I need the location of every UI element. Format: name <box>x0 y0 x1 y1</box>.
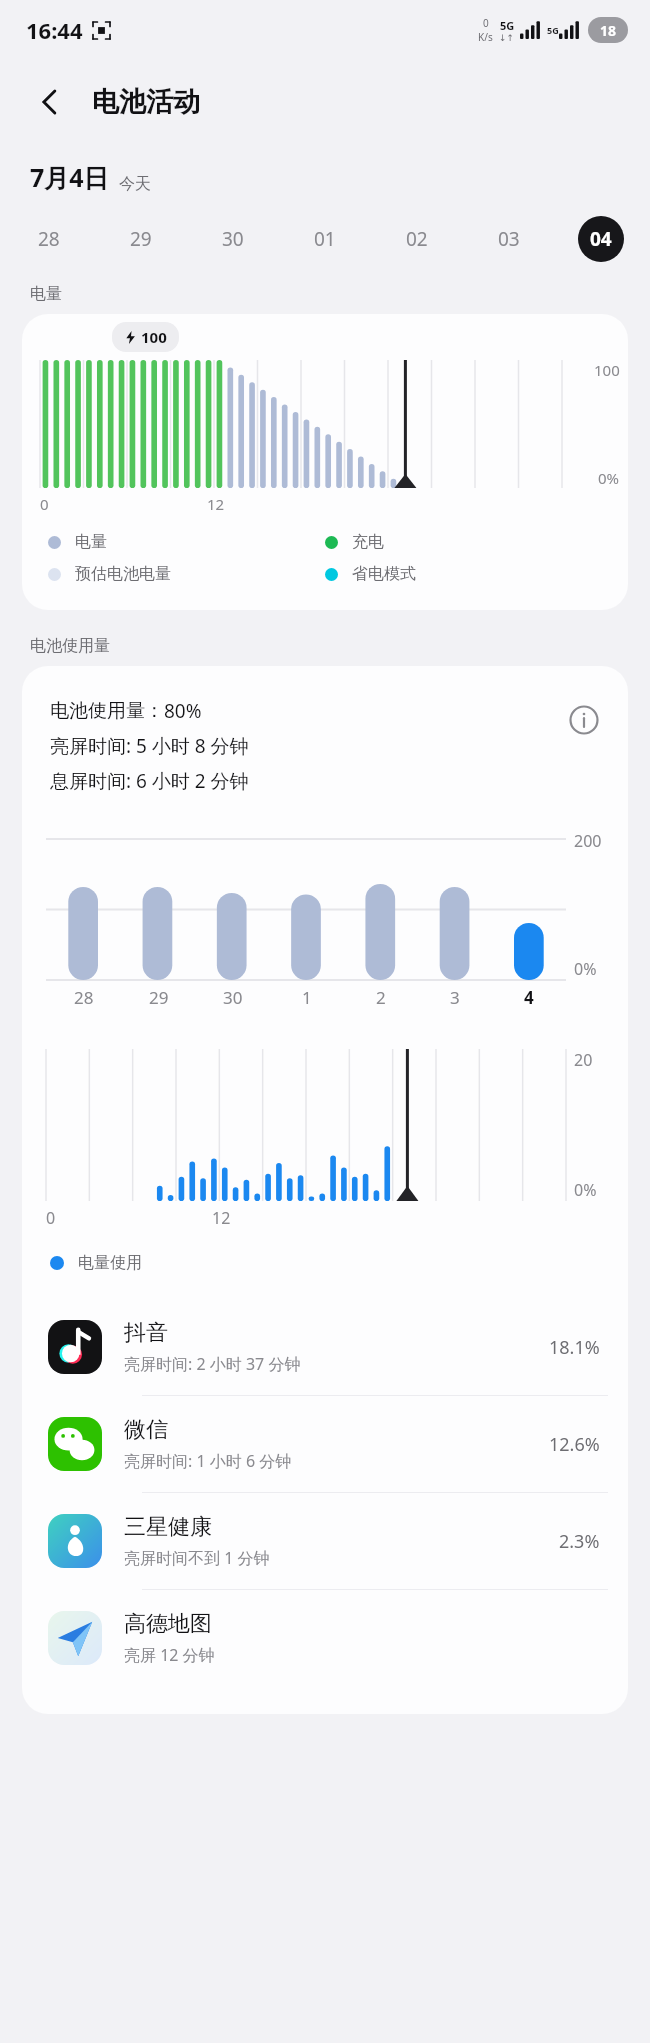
button[interactable]: 30 <box>210 216 256 262</box>
staticText: 2.3% <box>559 1529 600 1554</box>
staticText: 电量 <box>30 284 62 304</box>
staticText: 12 <box>207 494 562 514</box>
button[interactable]: 三星健康 <box>22 1493 628 1590</box>
staticText: 0% <box>574 1179 597 1201</box>
staticText: 28 <box>74 986 94 1009</box>
staticText: 三星健康 <box>124 1513 212 1541</box>
staticText: 0 <box>483 16 489 30</box>
staticText: 亮屏时间: 5 小时 8 分钟 <box>50 733 249 759</box>
staticText: 息屏时间: 6 小时 2 分钟 <box>50 768 249 794</box>
staticText: 省电模式 <box>352 564 416 584</box>
staticText: 04 <box>590 226 612 252</box>
staticText: 200 <box>574 830 602 852</box>
staticText: 电池使用量： <box>50 699 164 723</box>
button[interactable]: 04 <box>578 216 624 262</box>
button[interactable]: 03 <box>486 216 532 262</box>
staticText: 亮屏 12 分钟 <box>124 1644 215 1666</box>
staticText: 5G <box>547 24 559 36</box>
staticText: 18 <box>600 21 617 40</box>
staticText: 亮屏时间: 2 小时 37 分钟 <box>124 1353 301 1375</box>
staticText: 高德地图 <box>124 1610 212 1638</box>
button[interactable]: 01 <box>302 216 348 262</box>
staticText: 今天 <box>119 174 151 194</box>
button[interactable]: 高德地图 <box>22 1590 628 1686</box>
staticText: 01 <box>314 226 336 252</box>
staticText: K/s <box>478 30 493 44</box>
button[interactable]: 28 <box>26 216 72 262</box>
staticText: 18.1% <box>549 1335 600 1360</box>
staticText: ↓↑ <box>499 33 515 43</box>
staticText: 0 <box>40 494 207 514</box>
staticText: 3 <box>450 986 460 1009</box>
staticText: 2 <box>376 986 386 1009</box>
button[interactable]: 信息 <box>562 698 606 742</box>
staticText: 电量 <box>75 532 107 552</box>
staticText: 12.6% <box>549 1432 600 1457</box>
staticText: 12 <box>212 1207 566 1229</box>
staticText: 4 <box>524 986 534 1009</box>
button[interactable]: 29 <box>118 216 164 262</box>
staticText: 0% <box>574 958 597 980</box>
button[interactable]: 返回 <box>24 76 76 128</box>
staticText: 30 <box>222 226 244 252</box>
staticText: 1 <box>302 986 312 1009</box>
staticText: 5G <box>500 18 515 33</box>
staticText: 亮屏时间不到 1 分钟 <box>124 1547 270 1569</box>
staticText: 30 <box>223 986 243 1009</box>
staticText: 亮屏时间: 1 小时 6 分钟 <box>124 1450 292 1472</box>
staticText: 03 <box>498 226 520 252</box>
button[interactable]: 100 <box>22 314 628 610</box>
staticText: 20 <box>574 1049 593 1071</box>
button[interactable]: 抖音 <box>22 1299 628 1396</box>
staticText: 29 <box>130 226 152 252</box>
staticText: 28 <box>38 226 60 252</box>
staticText: 抖音 <box>124 1319 168 1347</box>
staticText: 微信 <box>124 1416 168 1444</box>
staticText: 预估电池电量 <box>75 564 171 584</box>
staticText: 0% <box>598 468 620 488</box>
staticText: 电量使用 <box>78 1253 142 1273</box>
staticText: 电池使用量 <box>30 636 110 656</box>
staticText: 02 <box>406 226 428 252</box>
staticText: 电池活动 <box>92 85 200 119</box>
staticText: 100 <box>594 360 620 380</box>
staticText: 充电 <box>352 532 384 552</box>
staticText: 100 <box>141 327 167 347</box>
staticText: 29 <box>149 986 169 1009</box>
staticText: 7月4日 <box>30 160 109 194</box>
staticText: 16:44 <box>26 15 83 45</box>
button[interactable]: 微信 <box>22 1396 628 1493</box>
button[interactable]: 02 <box>394 216 440 262</box>
staticText: 0 <box>46 1207 212 1229</box>
staticText: 80% <box>164 698 202 724</box>
